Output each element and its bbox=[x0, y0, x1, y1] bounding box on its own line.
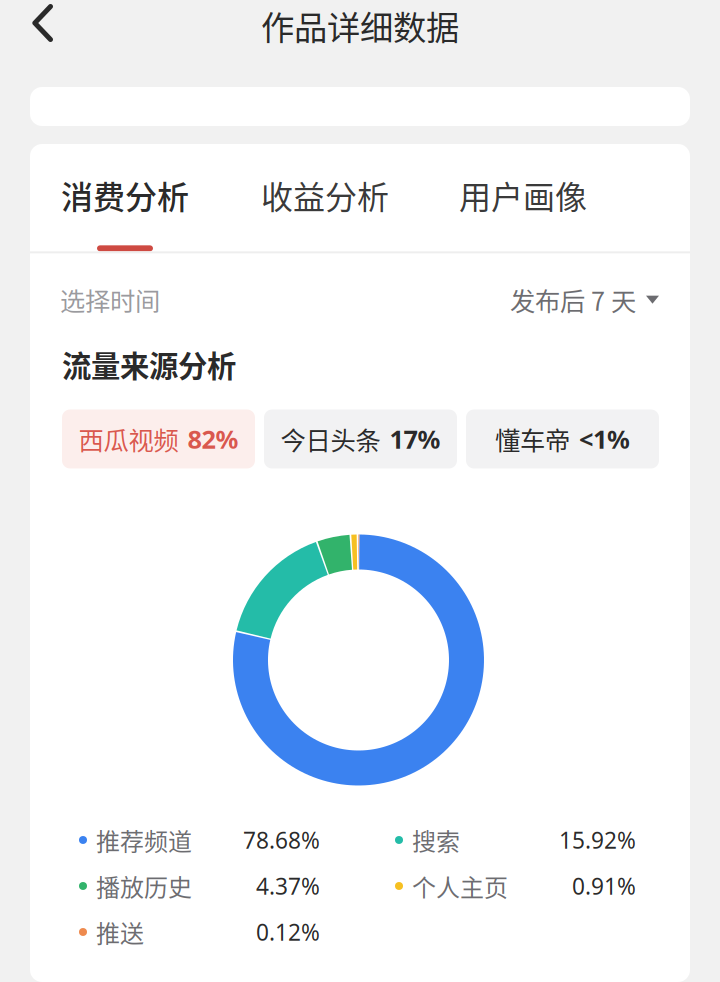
button[interactable]: 懂车帝 bbox=[466, 409, 659, 468]
staticText: <1% bbox=[579, 422, 630, 456]
staticText: 78.68% bbox=[243, 825, 320, 855]
staticText: 消费分析 bbox=[61, 172, 189, 218]
button[interactable]: Back bbox=[0, 1, 71, 55]
staticText: 17% bbox=[389, 422, 440, 456]
staticText: 82% bbox=[187, 422, 238, 456]
button[interactable]: 收益分析 bbox=[261, 172, 389, 251]
button[interactable]: 用户画像 bbox=[459, 172, 587, 251]
staticText: 选择时间 bbox=[60, 281, 160, 318]
staticText: 收益分析 bbox=[261, 172, 389, 218]
staticText: 播放历史 bbox=[96, 869, 192, 903]
staticText: 推送 bbox=[96, 915, 144, 949]
staticText: 作品详细数据 bbox=[261, 1, 459, 50]
staticText: 15.92% bbox=[559, 825, 636, 855]
staticText: 搜索 bbox=[412, 823, 460, 857]
button[interactable]: 西瓜视频 bbox=[62, 409, 255, 468]
staticText: 0.12% bbox=[256, 917, 320, 947]
staticText: 0.91% bbox=[572, 871, 636, 901]
staticText: 发布后 7 天 bbox=[510, 281, 636, 318]
staticText: 西瓜视频 bbox=[78, 421, 178, 457]
staticText: 用户画像 bbox=[459, 172, 587, 218]
staticText: 流量来源分析 bbox=[62, 343, 236, 385]
staticText: 个人主页 bbox=[412, 869, 508, 903]
button[interactable]: 消费分析 bbox=[61, 172, 189, 251]
button[interactable]: 发布后 7 天 bbox=[510, 281, 659, 318]
button[interactable]: 今日头条 bbox=[264, 409, 457, 468]
staticText: 今日头条 bbox=[280, 421, 380, 457]
staticText: 推荐频道 bbox=[96, 823, 192, 857]
staticText: 懂车帝 bbox=[495, 421, 570, 457]
staticText: 4.37% bbox=[256, 871, 320, 901]
